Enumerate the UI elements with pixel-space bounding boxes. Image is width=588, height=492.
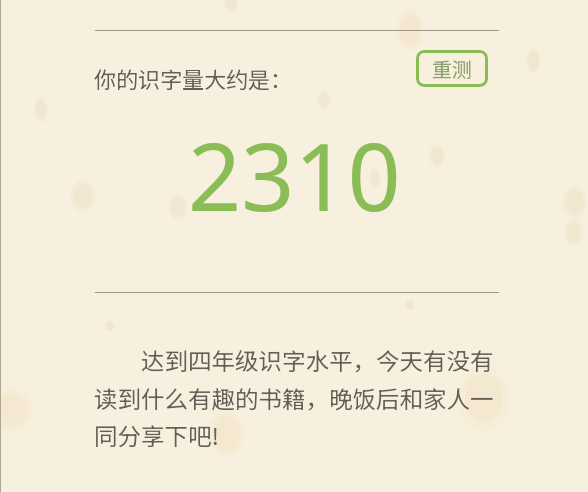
staticText: 2310: [188, 112, 401, 239]
staticText: 达到四年级识字水平，今天有没有读到什么有趣的书籍，晚饭后和家人一同分享下吧!: [94, 343, 498, 451]
button[interactable]: 重测: [416, 50, 488, 87]
staticText: 你的识字量大约是：: [94, 62, 293, 94]
staticText: 重测: [432, 54, 472, 83]
